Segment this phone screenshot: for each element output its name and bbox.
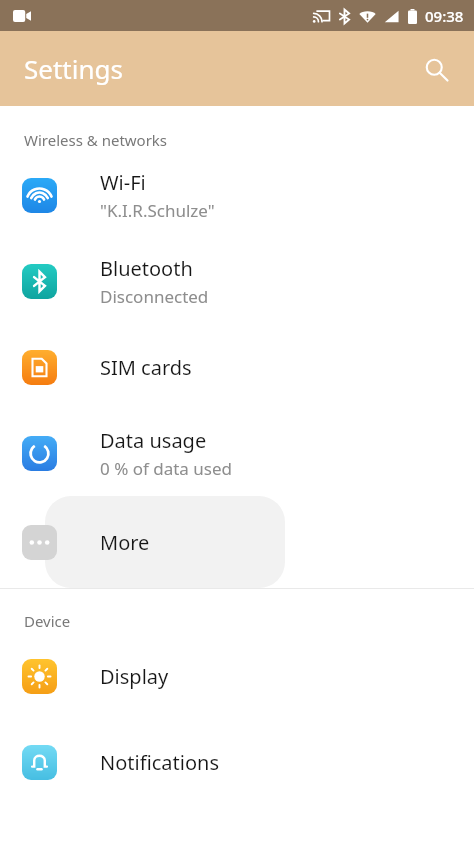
staticText: Wi-Fi (100, 169, 146, 196)
button[interactable]: Bluetooth (0, 238, 474, 324)
staticText: 0 % of data used (100, 457, 233, 480)
button[interactable]: Search (412, 45, 460, 93)
staticText: Data usage (100, 427, 207, 454)
button[interactable]: Display (0, 633, 474, 719)
staticText: 09:38 (425, 6, 464, 26)
staticText: Wireless & networks (24, 130, 168, 150)
button[interactable]: SIM cards (0, 324, 474, 410)
staticText: Settings (24, 51, 123, 86)
button[interactable]: More (0, 496, 474, 588)
button[interactable]: Notifications (0, 719, 474, 805)
staticText: Device (24, 611, 71, 631)
staticText: Display (100, 663, 169, 690)
staticText: SIM cards (100, 354, 192, 381)
button[interactable]: Wi-Fi (0, 152, 474, 238)
staticText: Disconnected (100, 285, 209, 308)
staticText: Bluetooth (100, 255, 193, 282)
staticText: "K.I.R.Schulze" (100, 199, 215, 222)
button[interactable]: Data usage (0, 410, 474, 496)
staticText: More (100, 529, 150, 556)
staticText: Notifications (100, 749, 219, 776)
